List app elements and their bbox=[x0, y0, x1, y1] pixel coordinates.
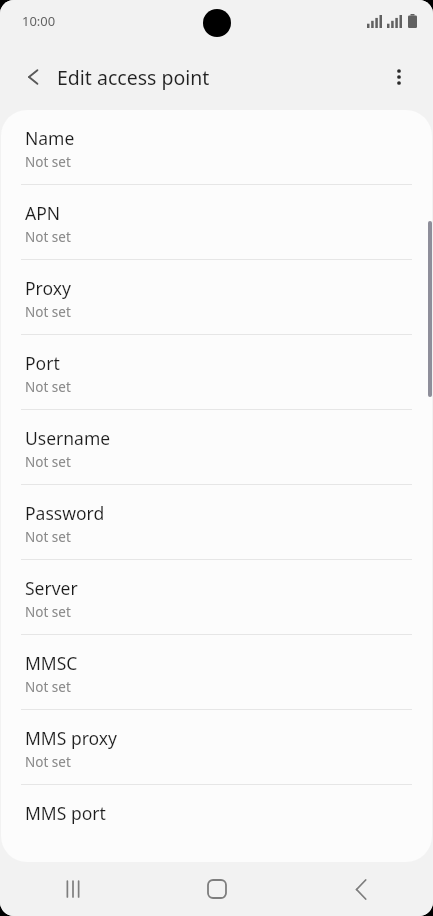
button[interactable]: Back bbox=[289, 862, 433, 916]
button[interactable]: More options bbox=[376, 54, 422, 100]
button[interactable]: Recent apps bbox=[0, 862, 145, 916]
button[interactable]: APN bbox=[1, 185, 432, 259]
staticText: Not set bbox=[25, 303, 71, 321]
staticText: Username bbox=[25, 426, 111, 450]
button[interactable]: Back bbox=[12, 54, 58, 100]
button[interactable]: Home bbox=[145, 862, 289, 916]
staticText: Proxy bbox=[25, 276, 71, 300]
button[interactable]: Username bbox=[1, 410, 432, 484]
staticText: Not set bbox=[25, 153, 71, 171]
staticText: Not set bbox=[25, 528, 71, 546]
staticText: Name bbox=[25, 126, 75, 150]
button[interactable]: MMS port bbox=[1, 785, 432, 838]
button[interactable]: MMSC bbox=[1, 635, 432, 709]
staticText: APN bbox=[25, 201, 61, 225]
staticText: MMSC bbox=[25, 651, 78, 675]
staticText: Not set bbox=[25, 678, 71, 696]
button[interactable]: Password bbox=[1, 485, 432, 559]
staticText: Not set bbox=[25, 228, 71, 246]
button[interactable]: Proxy bbox=[1, 260, 432, 334]
staticText: Not set bbox=[25, 753, 71, 771]
button[interactable]: Server bbox=[1, 560, 432, 634]
staticText: 10:00 bbox=[22, 12, 56, 30]
staticText: Not set bbox=[25, 603, 71, 621]
button[interactable]: MMS proxy bbox=[1, 710, 432, 784]
staticText: Not set bbox=[25, 453, 71, 471]
staticText: MMS proxy bbox=[25, 726, 117, 750]
button[interactable]: Port bbox=[1, 335, 432, 409]
staticText: Edit access point bbox=[57, 64, 210, 91]
staticText: Server bbox=[25, 576, 78, 600]
button[interactable]: Name bbox=[1, 110, 432, 184]
staticText: MMS port bbox=[25, 801, 106, 825]
staticText: Password bbox=[25, 501, 105, 525]
staticText: Not set bbox=[25, 378, 71, 396]
staticText: Port bbox=[25, 351, 60, 375]
